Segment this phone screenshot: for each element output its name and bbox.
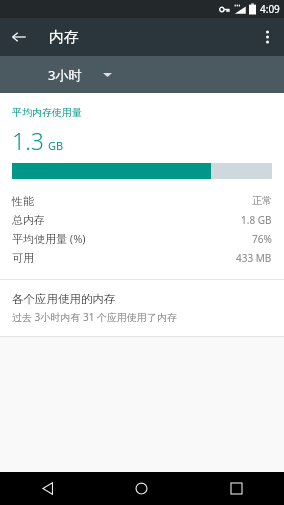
staticText: 76%: [252, 232, 272, 246]
staticText: 1.8 GB: [241, 213, 272, 227]
button[interactable]: Back: [0, 472, 94, 505]
staticText: 性能: [12, 194, 34, 208]
staticText: 总内存: [12, 213, 45, 227]
staticText: 内存: [49, 28, 79, 47]
staticText: 3小时: [48, 66, 82, 84]
button[interactable]: 各个应用使用的内存: [0, 280, 284, 336]
staticText: 正常: [252, 194, 272, 207]
staticText: GB: [48, 138, 64, 153]
staticText: 1.3: [12, 125, 44, 156]
staticText: 可用: [12, 251, 34, 265]
staticText: 平均使用量 (%): [12, 231, 86, 246]
button[interactable]: Recent apps: [189, 472, 284, 505]
button[interactable]: More options: [250, 20, 284, 54]
button[interactable]: Back: [0, 18, 38, 56]
staticText: 平均内存使用量: [12, 106, 82, 119]
button[interactable]: Home: [94, 472, 189, 505]
staticText: 过去 3小时内有 31 个应用使用了内存: [12, 310, 177, 324]
button[interactable]: 3小时: [0, 56, 284, 93]
staticText: 433 MB: [236, 251, 272, 265]
staticText: 4:09: [260, 2, 280, 16]
staticText: 各个应用使用的内存: [12, 292, 116, 306]
